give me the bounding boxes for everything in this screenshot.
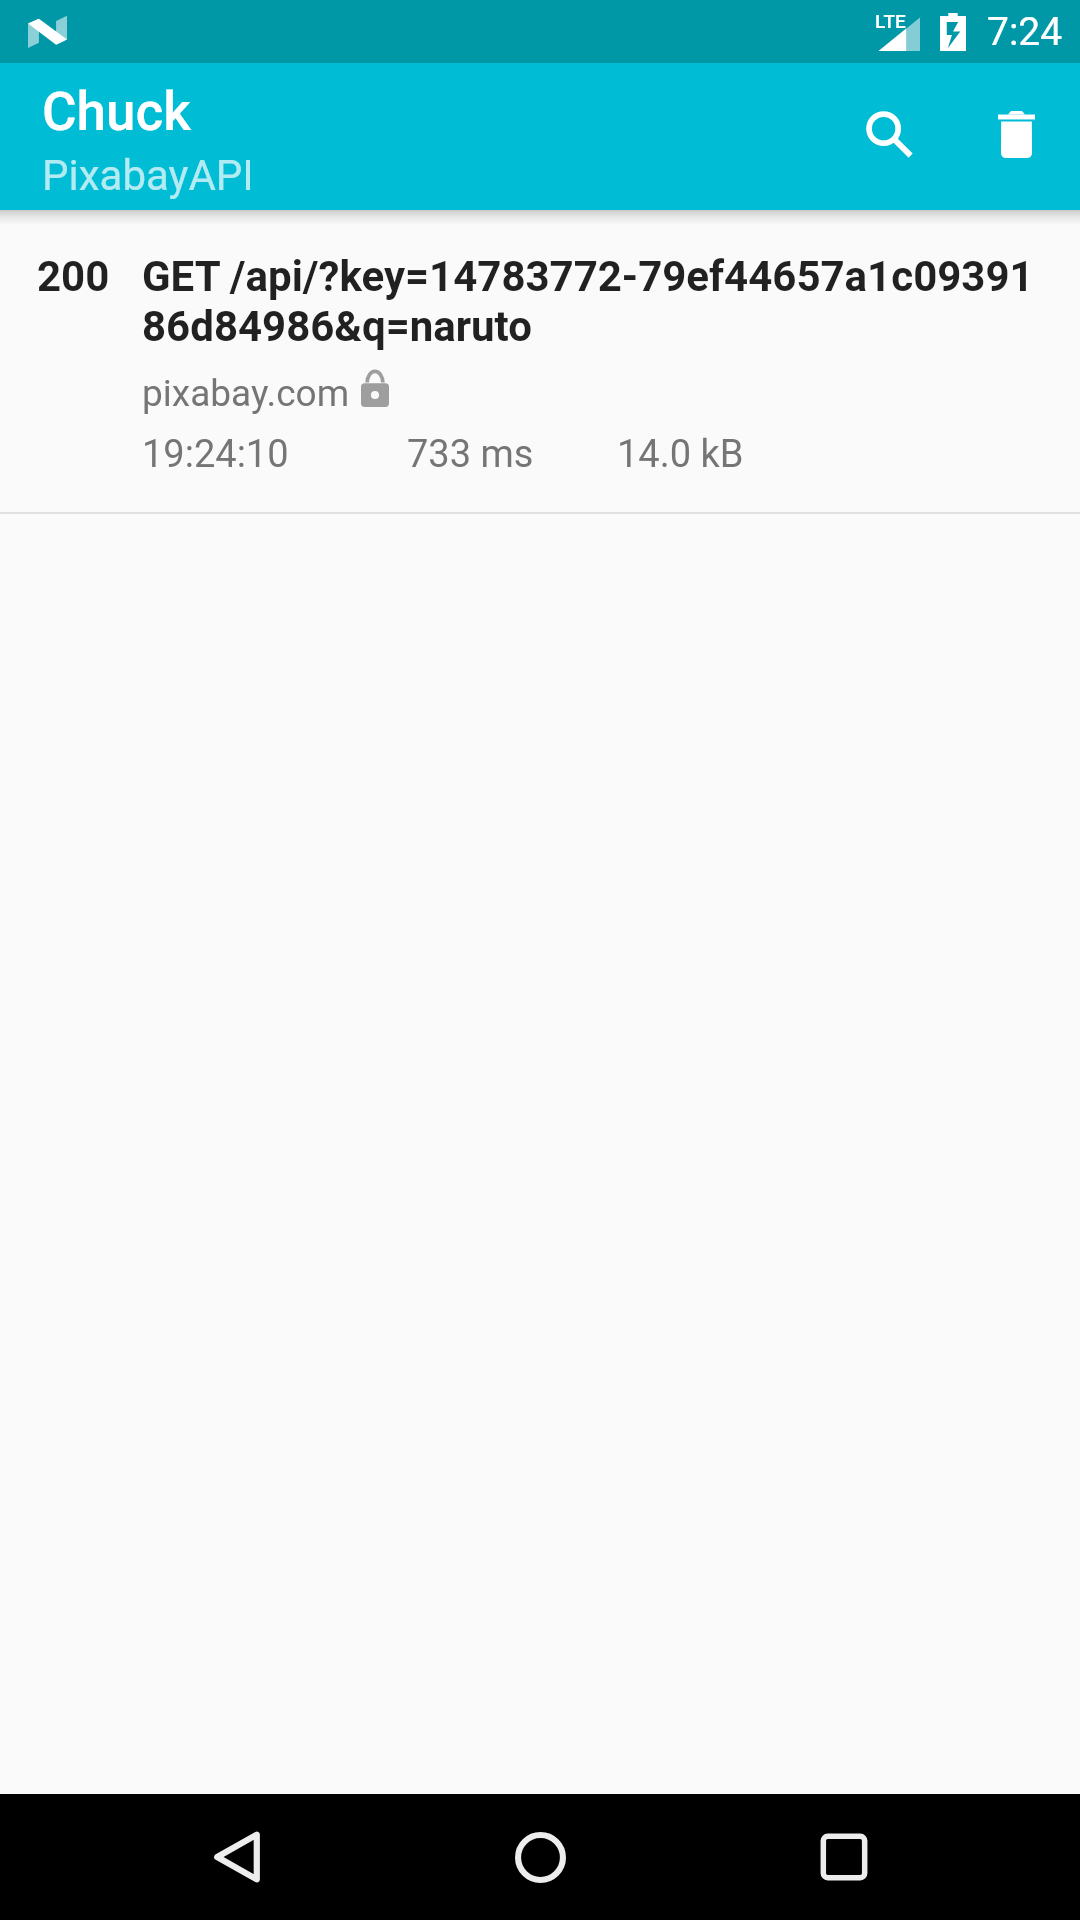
staticText: 7:24 xyxy=(987,9,1063,55)
button[interactable]: Clear xyxy=(950,68,1080,200)
staticText: Chuck xyxy=(42,81,191,143)
staticText: GET /api/?key=14783772-79ef44657a1c09391… xyxy=(142,252,1050,351)
button[interactable]: Back xyxy=(174,1794,300,1920)
button[interactable]: Recents xyxy=(781,1794,907,1920)
button[interactable]: Search xyxy=(823,68,955,200)
staticText: LTE xyxy=(875,10,906,32)
staticText: 200 xyxy=(37,252,110,301)
button[interactable]: 200 xyxy=(0,225,1080,512)
staticText: pixabay.com xyxy=(142,372,350,415)
staticText: 19:24:10 xyxy=(142,432,407,477)
staticText: 733 ms xyxy=(407,432,617,477)
staticText: 14.0 kB xyxy=(617,432,744,477)
button[interactable]: Home xyxy=(477,1794,603,1920)
staticText: PixabayAPI xyxy=(42,151,254,200)
